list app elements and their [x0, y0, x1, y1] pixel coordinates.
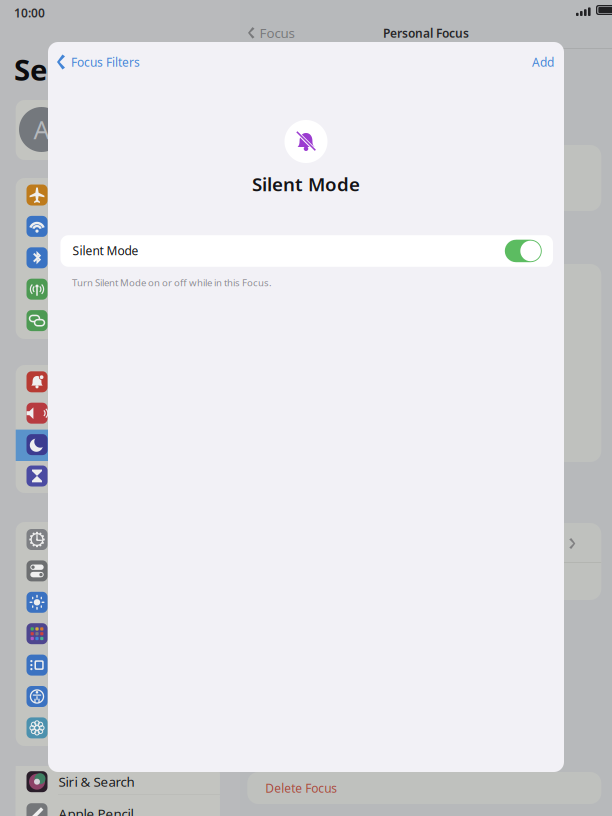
staticText: 10:00 — [14, 5, 45, 21]
staticText: Settings — [14, 49, 136, 89]
staticText: Apple Pencil — [58, 805, 133, 816]
staticText: Siri & Search — [58, 773, 134, 790]
staticText: A — [33, 113, 49, 146]
button[interactable]: Apple Pencil — [0, 0, 204, 31]
button[interactable] — [60, 235, 97, 258]
staticText: Silent Mode — [72, 243, 138, 259]
staticText: Focus — [259, 24, 294, 42]
button[interactable]: Siri & Search — [0, 0, 204, 31]
staticText: Add — [532, 54, 554, 70]
staticText: Silent Mode — [252, 172, 360, 196]
staticText: Delete Focus — [265, 780, 337, 796]
staticText: Focus Filters — [71, 54, 140, 70]
staticText: Turn Silent Mode on or off while in this… — [72, 276, 272, 289]
staticText: Personal Focus — [383, 25, 469, 41]
button[interactable]: Focus Filters — [48, 42, 178, 68]
button[interactable]: Add — [48, 42, 148, 68]
button[interactable]: Delete Focus — [240, 0, 594, 32]
